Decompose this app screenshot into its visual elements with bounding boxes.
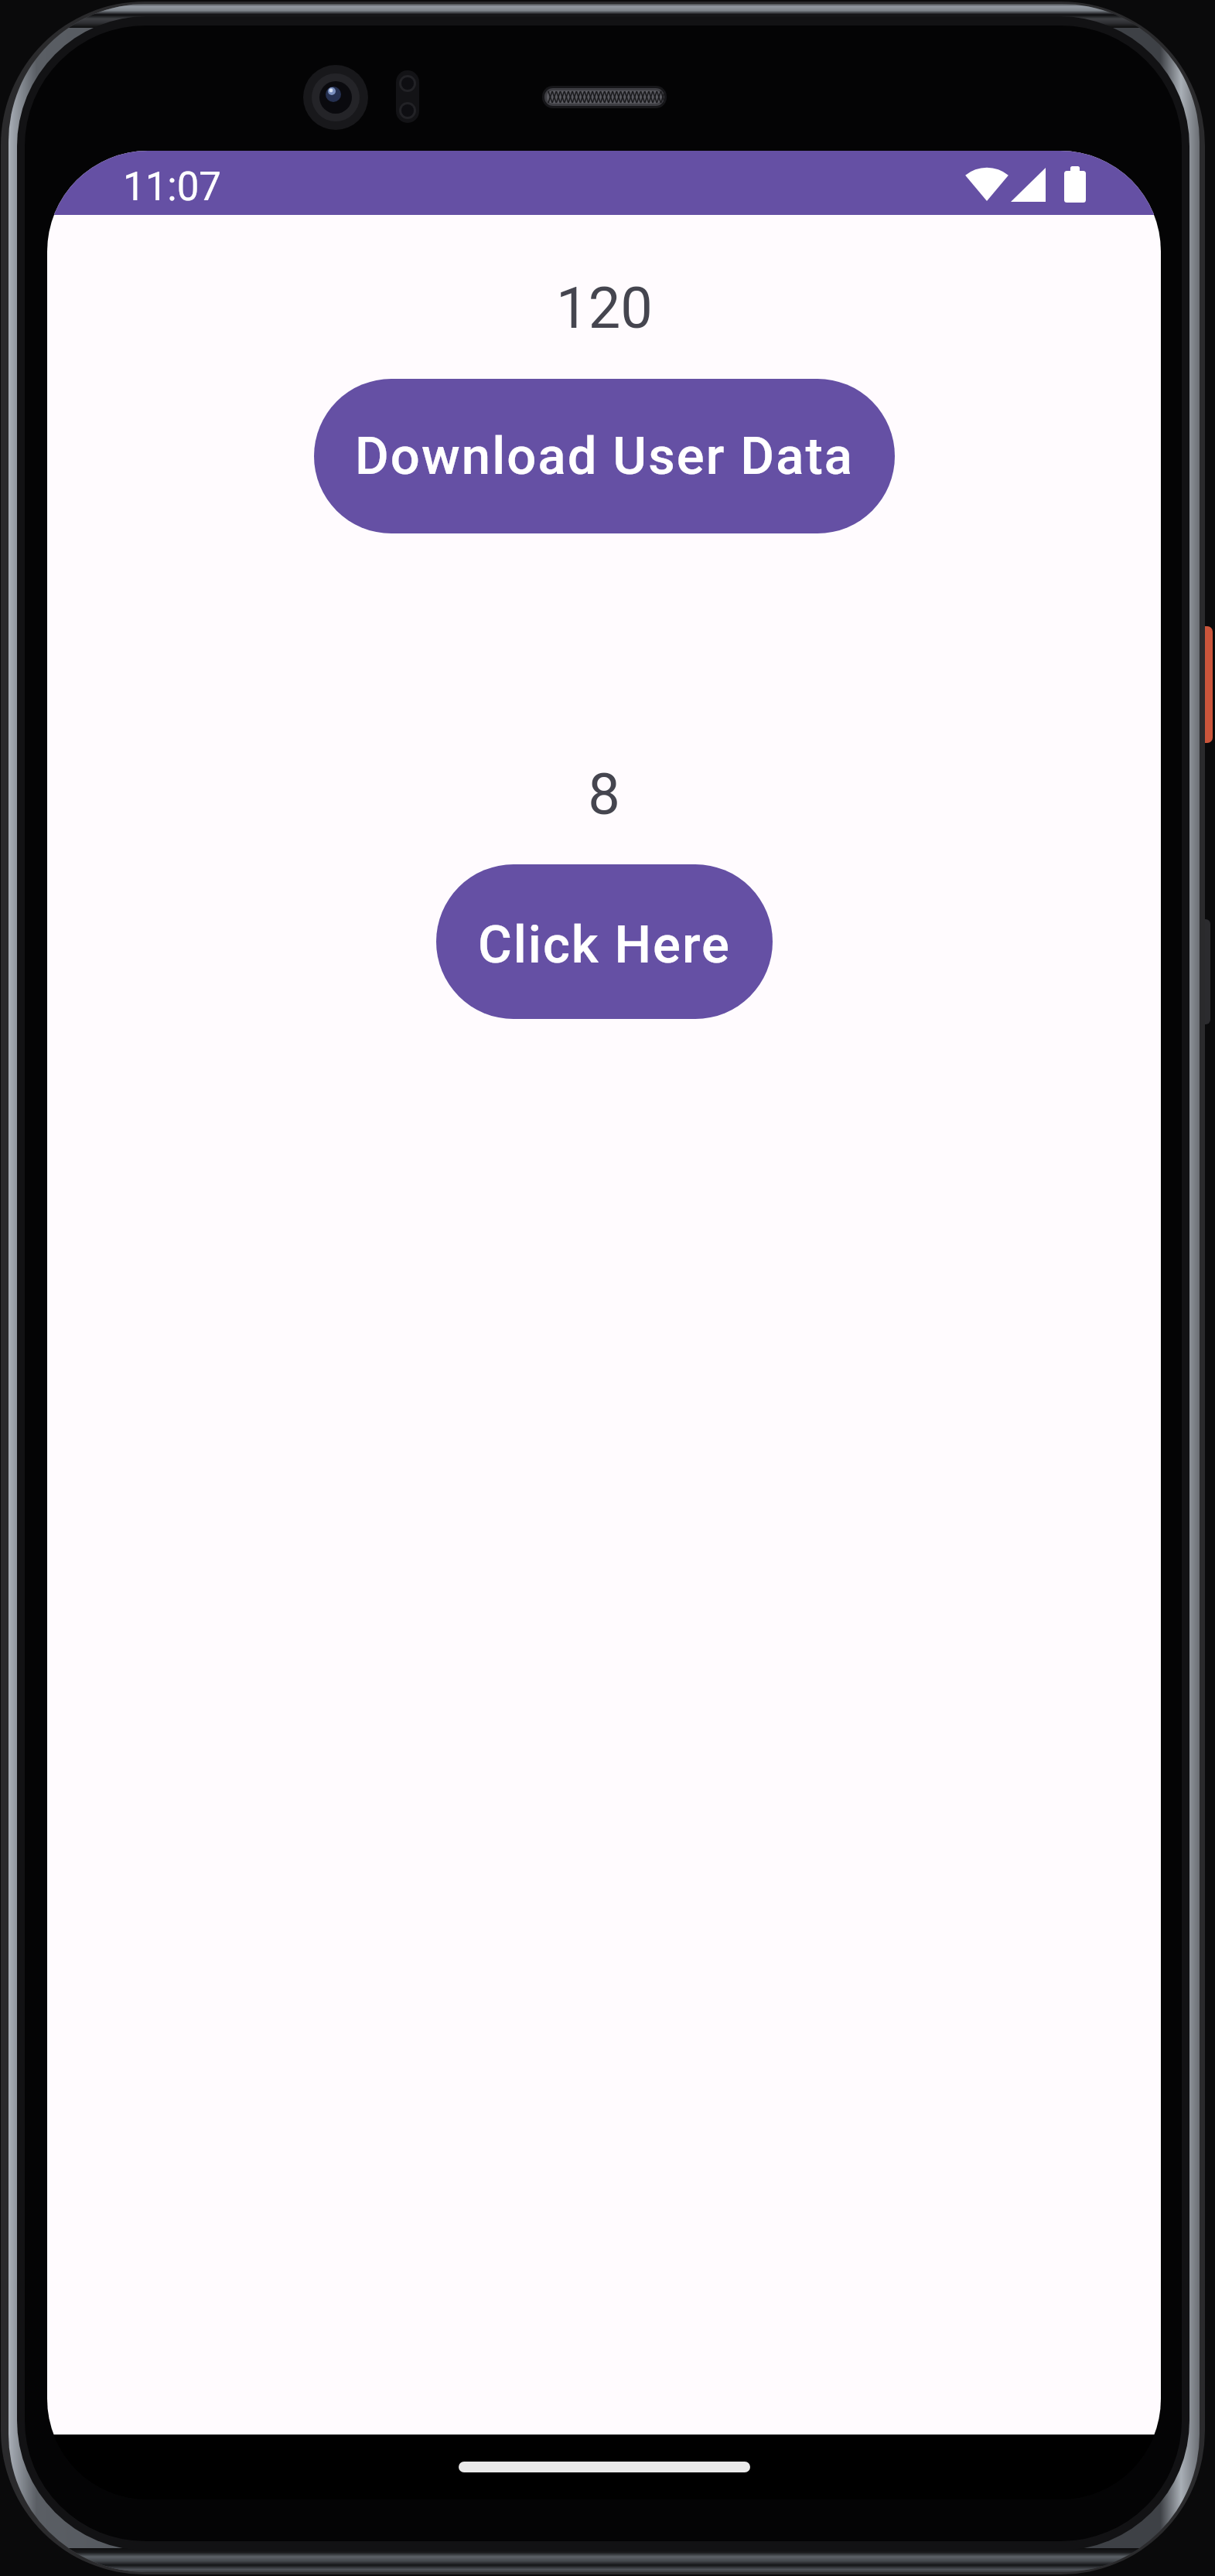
staticText: 8 [588, 761, 620, 828]
button[interactable]: Download User Data [314, 379, 895, 533]
other: Home [459, 2462, 750, 2472]
staticText: 120 [556, 274, 653, 342]
staticText: 11:07 [123, 164, 222, 210]
staticText: Download User Data [355, 426, 855, 487]
other: Mobile signal [1011, 168, 1046, 202]
button[interactable]: Click Here [436, 864, 773, 1019]
other: Wi-Fi signal [966, 167, 1008, 201]
other: Battery full [1064, 166, 1086, 203]
staticText: Click Here [478, 915, 731, 976]
